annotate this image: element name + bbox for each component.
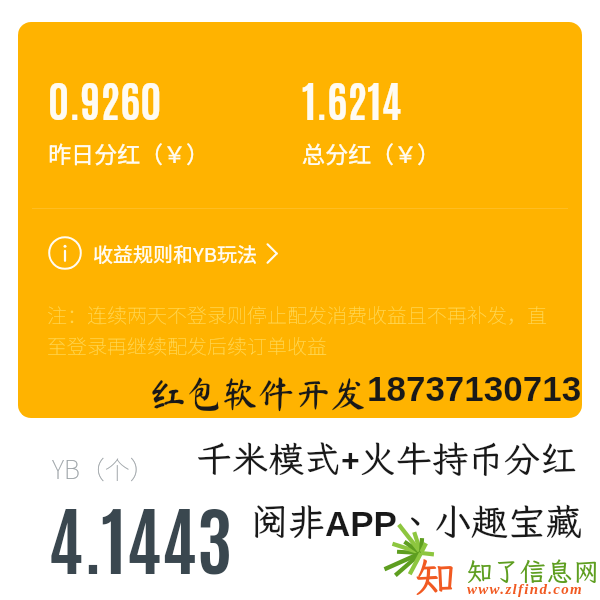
staticText: 火牛持币分红 bbox=[360, 435, 577, 482]
staticText: 阅非 bbox=[251, 497, 325, 546]
other: zlfind.com logo bbox=[396, 540, 600, 600]
button[interactable]: 收益规则和YB玩法 bbox=[48, 236, 279, 270]
staticText: 红包软件开发 bbox=[150, 375, 367, 411]
staticText: 0.9260 bbox=[48, 70, 162, 126]
staticText: 知 bbox=[415, 550, 456, 600]
staticText: 、小趣宝藏 bbox=[397, 497, 582, 546]
staticText: 18737130713 bbox=[367, 369, 582, 408]
staticText: 注：连续两天不登录则停止配发消费收益且不再补发，直 至登录再继续配发后续订单收益 bbox=[47, 300, 567, 360]
staticText: 收益规则和YB玩法 bbox=[93, 239, 257, 268]
staticText: 千米模式 bbox=[196, 435, 341, 482]
staticText: 总分红（￥） bbox=[302, 136, 440, 169]
staticText: www.zlfind.com bbox=[467, 581, 583, 598]
button[interactable]: 0.9260 bbox=[18, 22, 582, 418]
staticText: YB（个） bbox=[52, 450, 155, 486]
staticText: 昨日分红（￥） bbox=[48, 136, 209, 169]
staticText: APP bbox=[325, 504, 397, 543]
staticText: 知了信息网 bbox=[467, 554, 600, 588]
staticText: 1.6214 bbox=[302, 70, 402, 126]
staticText: + bbox=[341, 442, 360, 478]
staticText: 4.1443 bbox=[48, 486, 233, 584]
